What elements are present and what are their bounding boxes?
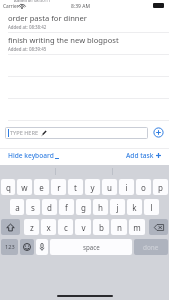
button[interactable]: m — [129, 219, 145, 235]
staticText: TYPE HERE — [10, 129, 39, 137]
staticText: q — [6, 182, 11, 193]
button[interactable]: Backspace — [149, 219, 168, 235]
button[interactable]: e — [34, 179, 49, 195]
button[interactable]: j — [110, 199, 125, 215]
button[interactable]: Add task — [153, 127, 164, 138]
button[interactable]: l — [144, 199, 159, 215]
button[interactable]: done — [134, 239, 168, 255]
button[interactable]: space — [50, 239, 132, 255]
staticText: y — [90, 182, 95, 193]
button[interactable]: order pasta for dinner — [0, 11, 169, 33]
staticText: g — [81, 202, 86, 213]
staticText: b — [99, 222, 104, 233]
staticText: m — [133, 222, 141, 233]
staticText: t — [74, 182, 77, 193]
staticText: e — [39, 182, 44, 193]
button[interactable]: TYPE HERE — [5, 127, 148, 139]
staticText: 123 — [5, 243, 15, 251]
staticText: Hide keyboard — [8, 151, 54, 160]
staticText: c — [64, 222, 68, 233]
staticText: 8:39 AM — [71, 3, 90, 10]
staticText: i — [125, 182, 128, 193]
button[interactable]: u — [102, 179, 117, 195]
staticText: Added at: 08:30:11 — [14, 0, 51, 4]
button[interactable]: o — [136, 179, 151, 195]
button[interactable]: c — [58, 219, 73, 235]
staticText: z — [30, 222, 34, 233]
button[interactable]: Hide keyboard — [6, 149, 61, 162]
button[interactable]: s — [26, 199, 40, 215]
button[interactable]: k — [127, 199, 142, 215]
staticText: Carrier — [3, 3, 19, 10]
staticText: h — [98, 202, 103, 213]
staticText: done — [143, 243, 159, 252]
button[interactable]: q — [1, 179, 15, 195]
button[interactable]: r — [51, 179, 66, 195]
button[interactable]: a — [10, 199, 24, 215]
button[interactable]: finish writing the new blogpost — [0, 33, 169, 55]
staticText: v — [81, 222, 86, 233]
staticText: order pasta for dinner — [8, 13, 87, 23]
staticText: Added at: 08:39:45 — [8, 46, 47, 52]
staticText: k — [132, 202, 137, 213]
button[interactable]: p — [153, 179, 168, 195]
button[interactable]: g — [76, 199, 91, 215]
staticText: Add task — [126, 151, 154, 160]
staticText: j — [116, 202, 119, 213]
button[interactable]: d — [42, 199, 57, 215]
staticText: s — [31, 202, 35, 213]
staticText: x — [46, 222, 51, 233]
button[interactable]: y — [85, 179, 100, 195]
button[interactable]: Emoji — [20, 239, 34, 255]
staticText: w — [21, 182, 28, 193]
staticText: l — [150, 202, 153, 213]
staticText: finish writing the new blogpost — [8, 35, 119, 45]
button[interactable]: w — [17, 179, 32, 195]
staticText: d — [47, 202, 52, 213]
button[interactable]: x — [41, 219, 56, 235]
staticText: n — [117, 222, 122, 233]
staticText: f — [65, 202, 68, 213]
button[interactable]: z — [24, 219, 39, 235]
staticText: r — [57, 182, 61, 193]
button[interactable]: 123 — [1, 239, 18, 255]
button[interactable]: Add task — [124, 149, 163, 162]
staticText: u — [107, 182, 112, 193]
staticText: o — [141, 182, 146, 193]
staticText: a — [15, 202, 20, 213]
button[interactable]: b — [93, 219, 109, 235]
button[interactable]: t — [68, 179, 83, 195]
button[interactable]: n — [111, 219, 127, 235]
staticText: Added at: 08:38:42 — [8, 24, 47, 30]
staticText: p — [158, 182, 163, 193]
button[interactable]: Shift — [1, 219, 20, 235]
button[interactable]: f — [59, 199, 74, 215]
button[interactable]: Dictate — [36, 239, 48, 255]
button[interactable]: h — [93, 199, 108, 215]
button[interactable]: i — [119, 179, 134, 195]
button[interactable]: v — [75, 219, 91, 235]
staticText: space — [83, 243, 100, 251]
